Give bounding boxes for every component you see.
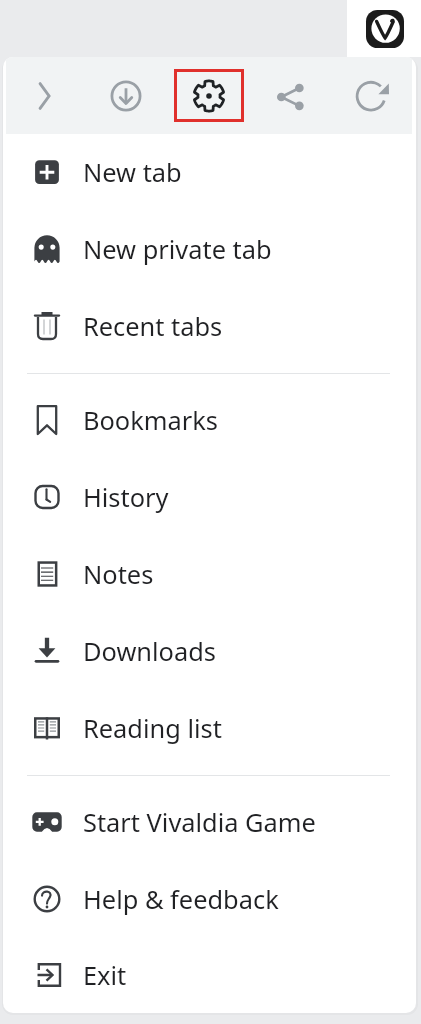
button[interactable]: History: [3, 459, 416, 536]
staticText: New private tab: [83, 232, 272, 267]
button[interactable]: Settings: [169, 57, 249, 134]
button[interactable]: Bookmarks: [3, 382, 416, 459]
staticText: Reading list: [83, 711, 222, 746]
button[interactable]: Notes: [3, 536, 416, 613]
staticText: Start Vivaldia Game: [83, 805, 316, 840]
button[interactable]: Recent tabs: [3, 288, 416, 365]
staticText: Notes: [83, 557, 154, 592]
staticText: Help & feedback: [83, 882, 279, 917]
staticText: History: [83, 480, 169, 515]
staticText: Exit: [83, 958, 127, 993]
button[interactable]: Reload: [332, 57, 412, 134]
button[interactable]: Share: [250, 57, 330, 134]
staticText: Recent tabs: [83, 309, 223, 344]
button[interactable]: Help & feedback: [3, 861, 416, 938]
button[interactable]: Download page: [86, 57, 166, 134]
button[interactable]: Reading list: [3, 690, 416, 767]
button[interactable]: Start Vivaldia Game: [3, 784, 416, 861]
button[interactable]: Downloads: [3, 613, 416, 690]
button[interactable]: Exit: [3, 938, 416, 1013]
button[interactable]: New private tab: [3, 211, 416, 288]
staticText: New tab: [83, 155, 182, 190]
staticText: Downloads: [83, 634, 216, 669]
button[interactable]: New tab: [3, 134, 416, 211]
staticText: Bookmarks: [83, 403, 218, 438]
button[interactable]: Forward: [5, 57, 85, 134]
